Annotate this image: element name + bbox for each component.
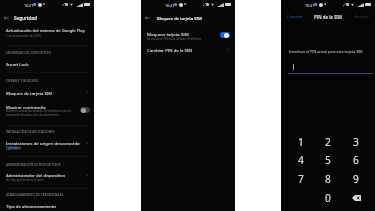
staticText: Tipo de almacenamiento — [6, 203, 56, 209]
staticText: SEGURIDAD DEL DISPOSITIVO — [6, 51, 51, 55]
staticText: Cambiar PIN de la SIM — [147, 47, 193, 53]
staticText: 6 — [353, 153, 359, 167]
staticText: 1 permitido — [6, 146, 22, 150]
staticText: Bloqueo de tarjeta SIM — [157, 16, 202, 21]
button[interactable]: 9 — [343, 169, 369, 188]
staticText: No hay aplicaciones activas — [6, 178, 44, 182]
button[interactable] — [141, 44, 235, 55]
staticText: ADMINISTRACIÓN DE DISPOSITIVOS — [6, 163, 61, 167]
staticText: 1 — [298, 135, 304, 149]
button[interactable] — [0, 58, 94, 69]
staticText: Bloqueo de tarjeta SIM — [6, 90, 53, 96]
staticText: Aceptar — [355, 14, 370, 19]
button[interactable] — [0, 101, 94, 119]
staticText: Mostrar caracteres cuando se introducen … — [6, 109, 76, 117]
button[interactable]: 6 — [343, 150, 369, 169]
staticText: Mostrar contraseña — [6, 104, 46, 110]
staticText: INSTALACIÓN DE APLICACIONES — [6, 130, 55, 134]
button[interactable]: 8 — [315, 169, 341, 188]
staticText: 10:41 — [165, 3, 175, 8]
button[interactable] — [0, 137, 94, 150]
button[interactable]: Back — [144, 14, 152, 22]
staticText: Cancelar — [287, 14, 303, 19]
button[interactable]: 3 — [343, 132, 369, 151]
staticText: Instalaciones de origen desconocido — [6, 140, 80, 146]
staticText: 0 — [325, 191, 331, 205]
staticText: 3 — [353, 135, 359, 149]
staticText: Smart Lock — [6, 61, 29, 67]
button[interactable]: 0 — [315, 188, 341, 207]
staticText: Seguridad — [14, 15, 37, 21]
staticText: PIN de la SIM — [314, 14, 342, 20]
staticText: 5 — [325, 153, 331, 167]
staticText: 10:41 — [305, 3, 315, 8]
button[interactable]: Toggle — [80, 107, 90, 113]
button[interactable] — [0, 200, 94, 211]
button[interactable] — [0, 25, 94, 41]
staticText: Introduce el PIN actual para esta tarjet… — [289, 49, 363, 54]
staticText: Actualización del sistema de Google Play — [6, 28, 85, 34]
staticText: Se requiere PIN para utilizar el teléfon… — [147, 37, 202, 41]
button[interactable] — [0, 169, 94, 183]
button[interactable]: Toggle — [220, 32, 230, 38]
button[interactable]: 2 — [315, 132, 341, 151]
staticText: 9 — [353, 172, 359, 186]
button[interactable]: 1 — [288, 132, 314, 151]
staticText: 4 — [298, 153, 304, 167]
staticText: 2 — [325, 135, 331, 149]
staticText: 1 de septiembre de 2023 — [6, 34, 41, 38]
button[interactable]: Back — [3, 14, 11, 22]
button[interactable]: Aceptar — [355, 12, 373, 21]
staticText: Bloquear tarjeta SIM — [147, 31, 189, 37]
staticText: 10:41 — [24, 3, 34, 8]
button[interactable] — [141, 28, 235, 43]
button[interactable]: 7 — [288, 169, 314, 188]
staticText: 8 — [325, 172, 331, 186]
button[interactable]: 4 — [288, 150, 314, 169]
staticText: CIFRADO Y BLOQUEO — [6, 79, 39, 83]
button[interactable]: Cancelar — [287, 12, 309, 21]
staticText: Administrador del dispositivo — [6, 172, 66, 178]
staticText: ALMACENAMIENTO DE CREDENCIALES — [6, 193, 64, 197]
button[interactable]: 5 — [315, 150, 341, 169]
button[interactable]: Backspace — [343, 188, 369, 207]
staticText: 7 — [298, 172, 304, 186]
button[interactable] — [0, 87, 94, 98]
